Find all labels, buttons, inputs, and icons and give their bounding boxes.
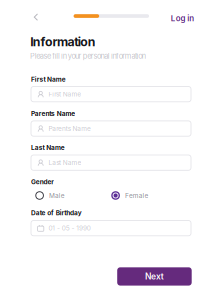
button[interactable]: Female — [111, 191, 148, 200]
button[interactable]: 01 - 05 - 1990 — [31, 220, 191, 236]
staticText: Last Name — [31, 144, 65, 152]
staticText: Log in — [171, 13, 194, 23]
button[interactable]: Back — [28, 8, 46, 26]
staticText: 01 - 05 - 1990 — [48, 224, 91, 232]
staticText: Date of Birthday — [31, 209, 82, 217]
staticText: Parents Name — [48, 125, 91, 132]
button[interactable]: Parents Name — [31, 121, 191, 136]
staticText: Last Name — [48, 159, 81, 167]
button[interactable]: Last Name — [31, 155, 191, 170]
button[interactable]: Log in — [167, 9, 198, 27]
staticText: First Name — [31, 75, 66, 83]
staticText: Next — [145, 271, 164, 282]
staticText: Please fill in your personal information — [30, 52, 146, 61]
staticText: Male — [49, 191, 65, 199]
staticText: Gender — [31, 178, 54, 186]
staticText: Parents Name — [31, 110, 75, 118]
button[interactable]: Next — [117, 267, 192, 286]
staticText: Information — [30, 34, 96, 49]
button[interactable]: Male — [35, 191, 65, 200]
button[interactable]: First Name — [31, 86, 191, 102]
staticText: Female — [125, 191, 148, 199]
staticText: First Name — [48, 90, 81, 98]
